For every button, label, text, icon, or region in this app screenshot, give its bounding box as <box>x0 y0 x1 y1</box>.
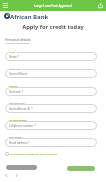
staticText: African Bank <box>10 13 49 21</box>
button[interactable]: Next <box>67 166 95 171</box>
staticText: Name * <box>9 55 20 59</box>
button[interactable]: South African ID * <box>5 104 97 113</box>
staticText: NAME * <box>9 51 16 53</box>
button[interactable]: Second Name <box>5 69 97 78</box>
staticText: Surname * <box>9 90 24 94</box>
staticText: Apply for credit today <box>0 23 106 31</box>
staticText: CELLPHONE NUMBER * <box>9 119 28 121</box>
staticText: EMAIL ADDRESS * <box>9 136 23 138</box>
button[interactable]: Previous <box>6 165 37 170</box>
staticText: Cellphone number * <box>9 124 36 128</box>
button[interactable]: AB PRODUCT MARKETING INFO CONSENT <box>5 151 57 157</box>
staticText: SOUTH AFRICAN ID * <box>9 102 26 104</box>
staticText: Large Loan Fast Approval <box>34 4 72 8</box>
button[interactable]: Email address * <box>5 138 97 147</box>
button[interactable]: Back <box>2 171 11 180</box>
staticText: AB PRODUCT MARKETING INFO CONSENT <box>10 153 57 156</box>
staticText: Personal details <box>5 37 31 42</box>
button[interactable]: Share <box>95 0 106 11</box>
button[interactable]: Surname * <box>5 87 97 96</box>
staticText: Email address * <box>9 141 30 145</box>
staticText: SURNAME * <box>9 85 19 87</box>
button[interactable]: Menu <box>0 0 11 11</box>
button[interactable]: Cellphone number * <box>5 121 97 130</box>
staticText: SECOND NAME <box>9 68 21 70</box>
button[interactable]: Name * <box>5 52 97 61</box>
staticText: Second Name <box>9 72 28 76</box>
staticText: South African ID * <box>9 107 33 111</box>
staticText: * indicates required fields <box>5 42 30 45</box>
button[interactable]: Forward <box>12 171 21 180</box>
